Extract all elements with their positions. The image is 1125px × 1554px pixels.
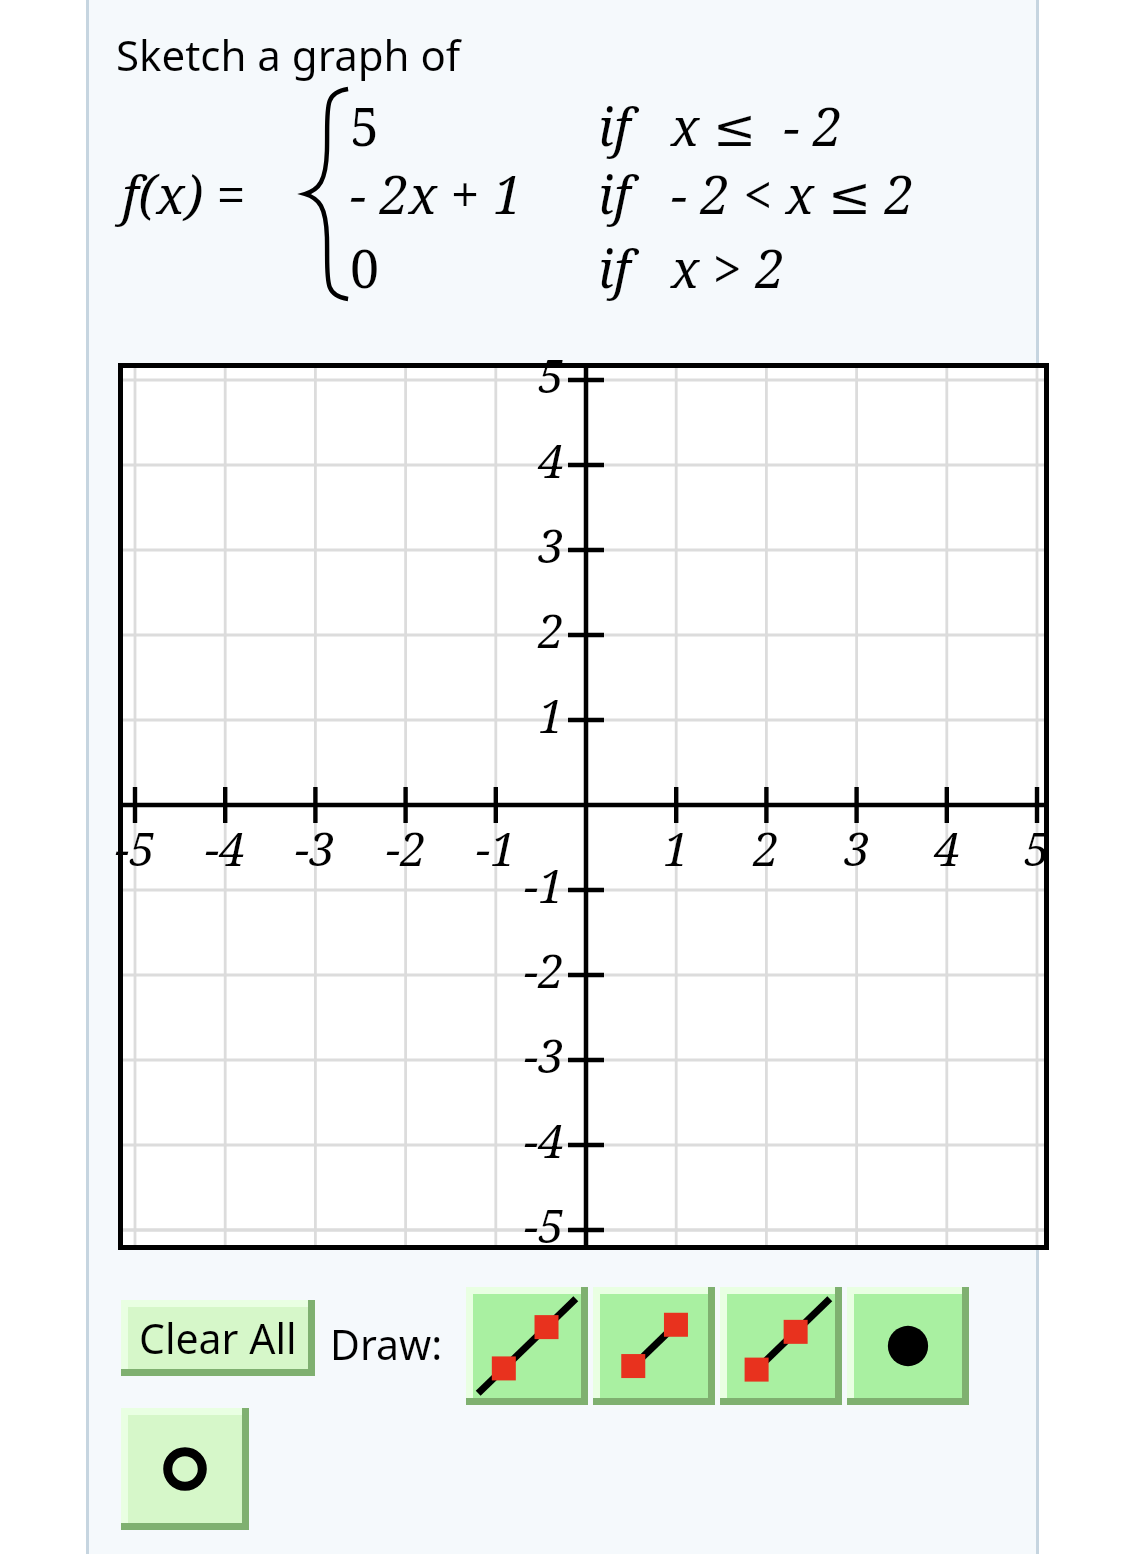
staticText: 3 <box>825 817 889 880</box>
staticText: 5 <box>496 344 564 407</box>
staticText: if − 2 < x ≤ 2 <box>598 158 914 229</box>
staticText: f(x) = <box>122 158 246 229</box>
staticText: 5 <box>1005 817 1069 880</box>
staticText: 0 <box>350 232 380 303</box>
staticText: 4 <box>496 429 564 492</box>
button[interactable]: Draw line through two points <box>466 1287 588 1405</box>
staticText: -5 <box>496 1194 564 1257</box>
staticText: 2 <box>734 817 798 880</box>
staticText: -2 <box>496 939 564 1002</box>
staticText: 5 <box>350 90 380 161</box>
button[interactable]: Draw closed point <box>847 1287 969 1405</box>
staticText: -3 <box>283 817 347 880</box>
staticText: -1 <box>464 817 528 880</box>
button[interactable]: Draw ray from a point <box>720 1287 842 1405</box>
staticText: if x > 2 <box>598 232 785 303</box>
staticText: − 2x + 1 <box>350 158 523 229</box>
staticText: Clear All <box>139 1310 297 1366</box>
staticText: Sketch a graph of <box>116 26 461 83</box>
button[interactable]: Draw open point <box>121 1408 249 1530</box>
button[interactable]: Clear All <box>121 1300 315 1376</box>
staticText: -3 <box>496 1024 564 1087</box>
staticText: 2 <box>496 599 564 662</box>
staticText: -4 <box>193 817 257 880</box>
staticText: -1 <box>496 854 564 917</box>
staticText: Draw: <box>330 1316 443 1372</box>
button[interactable]: Draw segment between two points <box>593 1287 715 1405</box>
staticText: 1 <box>644 817 708 880</box>
staticText: 4 <box>915 817 979 880</box>
staticText: -4 <box>496 1109 564 1172</box>
staticText: -2 <box>374 817 438 880</box>
staticText: 3 <box>496 514 564 577</box>
staticText: -5 <box>103 817 167 880</box>
staticText: if x ≤ − 2 <box>598 90 843 161</box>
staticText: 1 <box>496 684 564 747</box>
